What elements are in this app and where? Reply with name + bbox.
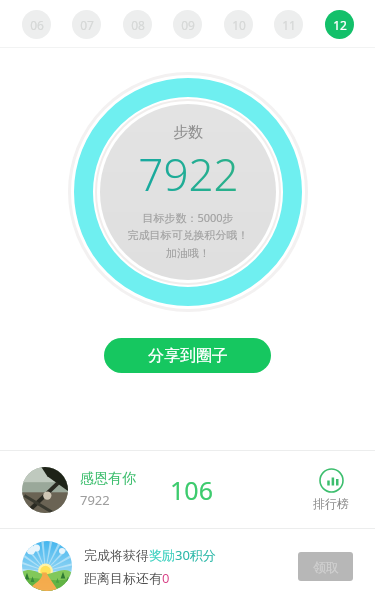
button[interactable]: 06 (22, 10, 51, 39)
button[interactable]: 09 (173, 10, 202, 39)
button[interactable]: 10 (224, 10, 253, 39)
button[interactable]: 12 (325, 10, 354, 39)
staticText: 11 (282, 17, 296, 33)
button[interactable]: 感恩有你 (0, 451, 375, 528)
button[interactable]: 分享到圈子 (104, 338, 271, 373)
staticText: 完成将获得奖励30积分 (84, 546, 216, 564)
staticText: 12 (333, 17, 347, 33)
staticText: 07 (80, 17, 94, 33)
button[interactable]: 排行榜 (309, 464, 353, 515)
button[interactable]: 08 (123, 10, 152, 39)
staticText: 距离目标还有0 (84, 569, 170, 587)
staticText: 步数 (173, 123, 203, 142)
staticText: 排行榜 (313, 496, 349, 511)
button[interactable]: 领取 (298, 552, 353, 581)
staticText: 7922 (138, 144, 239, 204)
button[interactable]: 11 (274, 10, 303, 39)
staticText: 感恩有你 (80, 470, 136, 488)
staticText: 06 (30, 17, 44, 33)
staticText: 分享到圈子 (148, 346, 228, 366)
staticText: 106 (170, 473, 213, 507)
staticText: 09 (181, 17, 195, 33)
button[interactable]: 07 (72, 10, 101, 39)
staticText: 08 (131, 17, 145, 33)
staticText: 10 (232, 17, 246, 33)
staticText: 7922 (80, 491, 110, 509)
staticText: 领取 (313, 559, 339, 575)
staticText: 目标步数：5000步 完成目标可兑换积分哦！ 加油哦！ (98, 210, 278, 261)
